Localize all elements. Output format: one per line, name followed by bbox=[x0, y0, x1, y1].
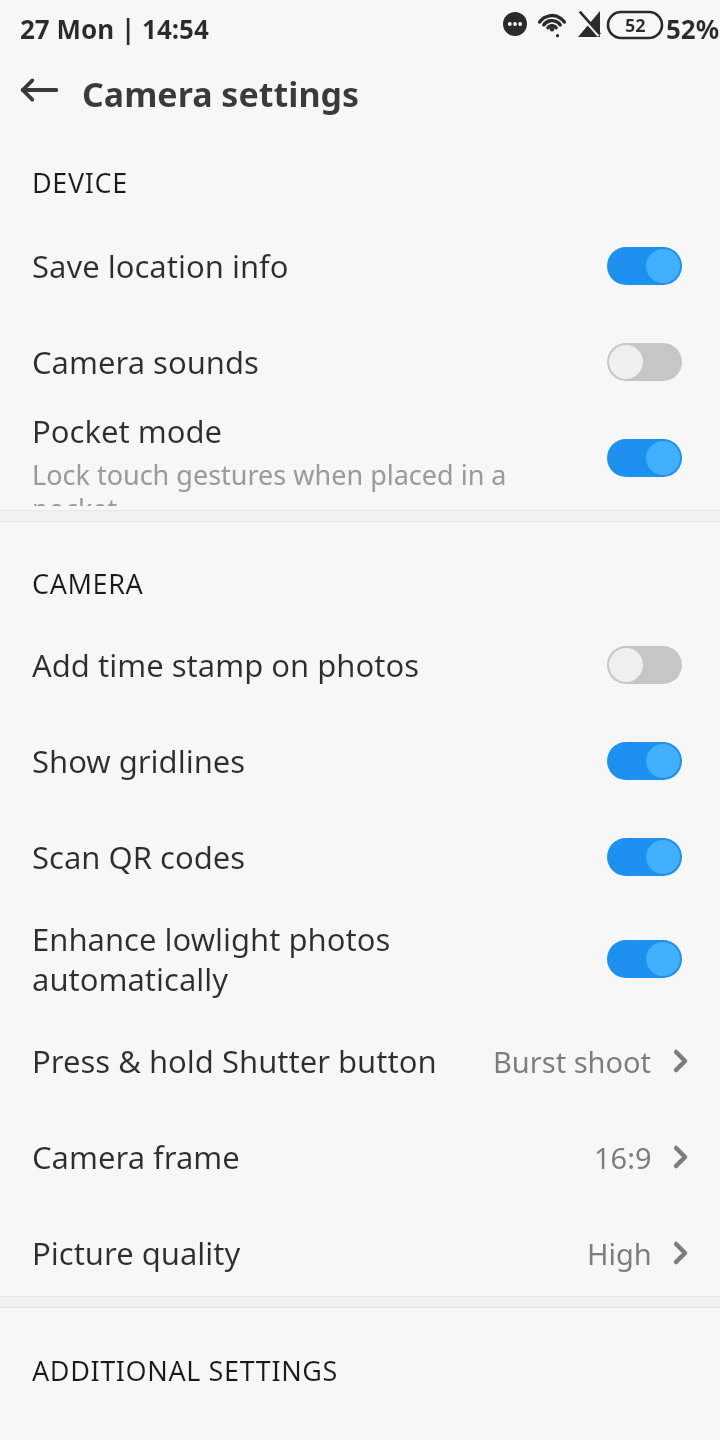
staticText: Burst shoot bbox=[493, 1042, 652, 1081]
staticText: Scan QR codes bbox=[32, 836, 246, 878]
button[interactable]: Camera sounds bbox=[0, 314, 720, 410]
staticText: 52% bbox=[666, 11, 720, 46]
staticText: Enhance lowlight photos automatically bbox=[32, 918, 391, 1000]
other: Toggle on bbox=[607, 439, 682, 477]
staticText: High bbox=[587, 1234, 652, 1273]
button[interactable]: Save location info bbox=[0, 218, 720, 314]
other: Toggle off bbox=[607, 646, 682, 684]
button[interactable]: Press & hold Shutter button bbox=[0, 1014, 720, 1108]
other: Open bbox=[666, 1046, 696, 1076]
button[interactable]: Show gridlines bbox=[0, 714, 720, 808]
other: Toggle off bbox=[607, 343, 682, 381]
other: Open bbox=[666, 1238, 696, 1268]
other: Toggle on bbox=[607, 838, 682, 876]
button[interactable]: Pocket mode bbox=[0, 410, 720, 506]
staticText: Camera sounds bbox=[32, 341, 259, 383]
staticText: Picture quality bbox=[32, 1232, 587, 1274]
other: Open bbox=[666, 1142, 696, 1172]
button[interactable]: Picture quality bbox=[0, 1206, 720, 1300]
staticText: DEVICE bbox=[32, 164, 128, 201]
staticText: Show gridlines bbox=[32, 740, 246, 782]
staticText: 27 Mon | 14:54 bbox=[20, 11, 209, 46]
button[interactable]: Enhance lowlight photos automatically bbox=[0, 900, 720, 1018]
staticText: Camera frame bbox=[32, 1136, 594, 1178]
staticText: Pocket mode bbox=[32, 410, 222, 452]
button[interactable]: Back bbox=[16, 66, 64, 114]
button[interactable]: Scan QR codes bbox=[0, 810, 720, 904]
button[interactable]: Add time stamp on photos bbox=[0, 618, 720, 712]
staticText: Lock touch gestures when placed in a poc… bbox=[32, 456, 591, 506]
other: Toggle on bbox=[607, 742, 682, 780]
staticText: CAMERA bbox=[32, 565, 144, 602]
staticText: Add time stamp on photos bbox=[32, 644, 420, 686]
staticText: Press & hold Shutter button bbox=[32, 1040, 493, 1082]
button[interactable]: Camera frame bbox=[0, 1110, 720, 1204]
other: Toggle on bbox=[607, 247, 682, 285]
staticText: ADDITIONAL SETTINGS bbox=[32, 1352, 338, 1389]
staticText: Save location info bbox=[32, 245, 289, 287]
staticText: Camera settings bbox=[82, 71, 360, 117]
other: Toggle on bbox=[607, 940, 682, 978]
staticText: 52 bbox=[625, 13, 646, 38]
staticText: 16:9 bbox=[594, 1138, 652, 1177]
